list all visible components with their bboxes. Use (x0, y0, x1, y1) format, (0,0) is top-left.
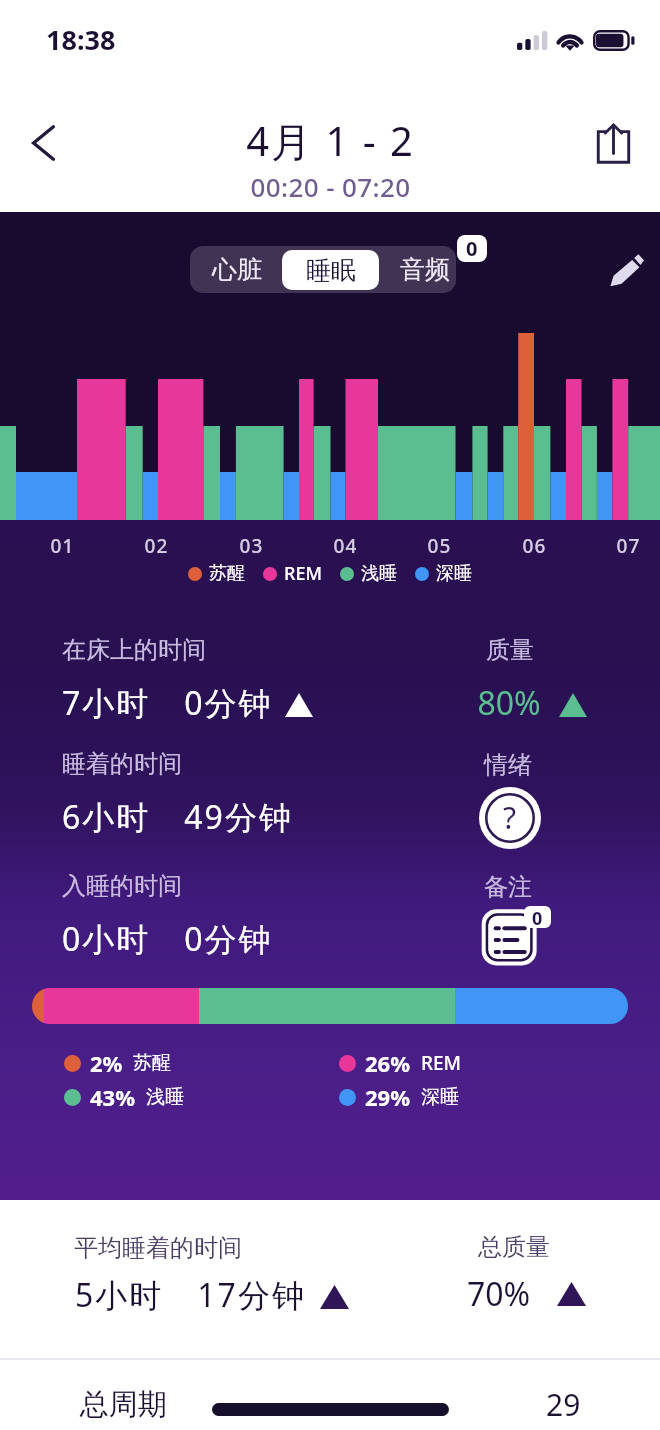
staticText: 浅睡 (146, 1085, 184, 1109)
button[interactable]: 总周期 (0, 1360, 660, 1430)
staticText: 音频 (400, 254, 450, 285)
staticText: 80% (477, 681, 541, 725)
staticText: 7小时 0分钟 (62, 681, 273, 725)
staticText: 苏醒 (133, 1051, 171, 1075)
staticText: 深睡 (421, 1085, 459, 1109)
staticText: 浅睡 (361, 562, 397, 585)
staticText: 03 (239, 533, 264, 559)
button[interactable]: Back (13, 113, 73, 173)
staticText: 29 (546, 1384, 581, 1425)
staticText: 01 (50, 533, 75, 559)
staticText: ? (503, 797, 517, 838)
staticText: 总质量 (478, 1232, 550, 1262)
staticText: 2% (90, 1048, 123, 1078)
staticText: 总周期 (80, 1386, 167, 1423)
staticText: 0小时 0分钟 (62, 917, 273, 961)
staticText: 07 (616, 533, 641, 559)
staticText: 平均睡着的时间 (74, 1233, 242, 1263)
button[interactable]: 睡眠 (282, 250, 379, 290)
staticText: 05 (427, 533, 452, 559)
button[interactable]: 0 (457, 235, 487, 262)
staticText: 0 (532, 906, 543, 928)
staticText: 26% (365, 1048, 411, 1078)
staticText: REM (284, 561, 322, 586)
staticText: 4月 1 - 2 (246, 113, 415, 168)
staticText: 02 (144, 533, 169, 559)
staticText: 质量 (486, 635, 534, 665)
staticText: 深睡 (436, 562, 472, 585)
staticText: 29% (365, 1082, 411, 1112)
staticText: 0 (466, 235, 478, 262)
staticText: 备注 (484, 872, 532, 902)
staticText: 04 (333, 533, 358, 559)
staticText: 睡眠 (306, 255, 356, 286)
staticText: 在床上的时间 (62, 635, 206, 665)
button[interactable]: Mood (479, 787, 541, 849)
staticText: 43% (90, 1082, 136, 1112)
staticText: 心脏 (212, 254, 262, 285)
button[interactable]: Edit (598, 242, 654, 298)
staticText: 18:38 (46, 21, 116, 58)
staticText: 5小时 17分钟 (75, 1273, 306, 1317)
staticText: 06 (522, 533, 547, 559)
button[interactable]: 音频 (379, 246, 470, 293)
staticText: REM (421, 1050, 462, 1076)
button[interactable]: 心脏 (190, 246, 283, 293)
staticText: 00:20 - 07:20 (250, 169, 411, 204)
staticText: 入睡的时间 (62, 871, 182, 901)
staticText: 情绪 (484, 750, 532, 780)
staticText: 70% (467, 1272, 531, 1316)
button[interactable]: Notes (481, 905, 551, 966)
staticText: 6小时 49分钟 (62, 795, 293, 839)
button[interactable]: Share (583, 113, 644, 174)
staticText: 睡着的时间 (62, 749, 182, 779)
staticText: 苏醒 (209, 562, 245, 585)
